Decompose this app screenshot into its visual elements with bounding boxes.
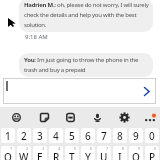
staticText: U (100, 150, 108, 160)
staticText: Hadrien M.: oh, please do not worry, I w… (24, 1, 150, 28)
staticText: 7 (106, 146, 109, 151)
staticText: Q (4, 150, 12, 160)
button[interactable]: 5 (65, 128, 79, 143)
button[interactable]: 8 (113, 146, 127, 160)
staticText: 5 (69, 129, 75, 143)
staticText: 0 (149, 129, 155, 143)
staticText: 1 (10, 146, 13, 151)
staticText: R (53, 150, 60, 160)
button[interactable]: 4 (49, 128, 63, 143)
staticText: 4 (58, 146, 61, 151)
staticText: 8 (122, 146, 125, 151)
staticText: O (132, 150, 140, 160)
button[interactable]: Send (3, 78, 156, 104)
button[interactable]: 7 (97, 146, 111, 160)
staticText: 1 (5, 129, 11, 143)
button[interactable]: 1 (1, 146, 15, 160)
button[interactable]: GIF (59, 109, 81, 125)
staticText: 8 (117, 129, 123, 143)
button[interactable]: Settings (113, 109, 135, 125)
staticText: 3 (37, 129, 43, 143)
button[interactable]: Stickers (33, 109, 55, 125)
button[interactable]: Emoji (5, 109, 27, 125)
button[interactable]: 8 (113, 128, 127, 143)
staticText: P (149, 150, 156, 160)
staticText: 6 (85, 129, 91, 143)
staticText: I (118, 150, 122, 160)
button[interactable]: Hadrien M.: oh, please do not worry, I w… (19, 0, 153, 32)
staticText: 6 (90, 146, 93, 151)
button[interactable]: 0 (145, 146, 159, 160)
button[interactable]: 2 (17, 146, 31, 160)
button[interactable]: 9 (129, 146, 143, 160)
staticText: 3 (42, 146, 45, 151)
staticText: 9 (133, 129, 139, 143)
staticText: Y (85, 150, 91, 160)
staticText: 9 (138, 146, 141, 151)
staticText: 0 (154, 146, 157, 151)
staticText: W (19, 150, 29, 160)
button[interactable]: Send (139, 84, 153, 98)
button[interactable]: 7 (97, 128, 111, 143)
button[interactable]: 1 (1, 128, 15, 143)
button[interactable]: 9 (129, 128, 143, 143)
button[interactable]: 3 (33, 128, 47, 143)
staticText: E (37, 150, 43, 160)
button[interactable]: 3 (33, 146, 47, 160)
staticText: 2 (26, 146, 29, 151)
button[interactable]: More options (139, 109, 160, 125)
staticText: 4 (53, 129, 59, 143)
button[interactable]: You: Im just going to throw the phone in… (19, 53, 153, 77)
staticText: 2 (21, 129, 27, 143)
staticText: 7 (101, 129, 107, 143)
button[interactable]: 5 (65, 146, 79, 160)
button[interactable]: 2 (17, 128, 31, 143)
staticText: You: Im just going to throw the phone in… (24, 56, 150, 73)
button[interactable]: Voice input (86, 109, 108, 125)
button[interactable]: 4 (49, 146, 63, 160)
button[interactable]: 6 (81, 146, 95, 160)
staticText: T (69, 150, 75, 160)
staticText: 5 (74, 146, 77, 151)
button[interactable]: 6 (81, 128, 95, 143)
staticText: 9:18 AM (25, 33, 48, 41)
button[interactable]: 0 (145, 128, 159, 143)
